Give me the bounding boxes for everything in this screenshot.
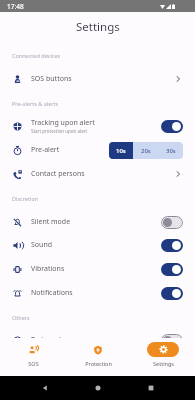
staticText: Pre-alert xyxy=(31,145,60,155)
button[interactable]: 10s xyxy=(109,142,133,159)
button[interactable]: Notifications xyxy=(0,281,195,305)
staticText: Pre-alerts & alerts xyxy=(12,100,59,107)
button[interactable]: Contact persons xyxy=(0,162,195,186)
staticText: Contact persons xyxy=(31,169,85,179)
staticText: SOS xyxy=(28,360,39,367)
button[interactable]: SOS buttons xyxy=(0,67,195,91)
staticText: Settings xyxy=(153,360,174,367)
staticText: SOS buttons xyxy=(31,74,72,84)
button[interactable]: 20s xyxy=(133,142,158,159)
staticText: 30s xyxy=(166,147,176,155)
staticText: Connected devices xyxy=(12,52,61,59)
staticText: Silent mode xyxy=(31,217,71,227)
staticText: 10s xyxy=(116,147,126,155)
button[interactable]: On xyxy=(161,263,183,276)
button[interactable]: SOS xyxy=(5,338,61,376)
button[interactable]: Pre-alert xyxy=(0,138,195,162)
button[interactable]: Test mode xyxy=(0,328,195,352)
staticText: Tracking upon alert xyxy=(31,118,95,128)
button[interactable]: On xyxy=(161,120,183,133)
other: Open xyxy=(173,169,183,179)
staticText: 20s xyxy=(141,147,151,155)
button[interactable]: Back xyxy=(18,385,71,391)
other: Open xyxy=(173,74,183,84)
staticText: Sound xyxy=(31,240,53,250)
staticText: Notifications xyxy=(31,288,73,298)
staticText: Protection xyxy=(85,360,112,367)
staticText: Vibrations xyxy=(31,264,65,274)
button[interactable]: Tracking upon alert xyxy=(0,114,195,138)
button[interactable]: On xyxy=(161,239,183,252)
staticText: 17:48 xyxy=(7,2,24,11)
button[interactable]: Protection xyxy=(70,338,126,376)
staticText: Discretion xyxy=(12,195,39,202)
button[interactable]: Silent mode xyxy=(0,210,195,234)
button[interactable]: Recents xyxy=(124,385,177,391)
button[interactable]: Off xyxy=(161,216,183,229)
button[interactable]: Sound xyxy=(0,233,195,257)
button[interactable]: Home xyxy=(71,385,124,391)
staticText: Start protection upon alert xyxy=(31,128,88,134)
staticText: Test mode xyxy=(31,335,66,345)
button[interactable]: On xyxy=(161,287,183,300)
button[interactable]: Vibrations xyxy=(0,257,195,281)
button[interactable]: 30s xyxy=(158,142,183,159)
button[interactable]: Off xyxy=(161,334,183,347)
button[interactable]: Settings xyxy=(135,338,191,376)
staticText: Others xyxy=(12,314,30,321)
staticText: Settings xyxy=(76,19,120,35)
